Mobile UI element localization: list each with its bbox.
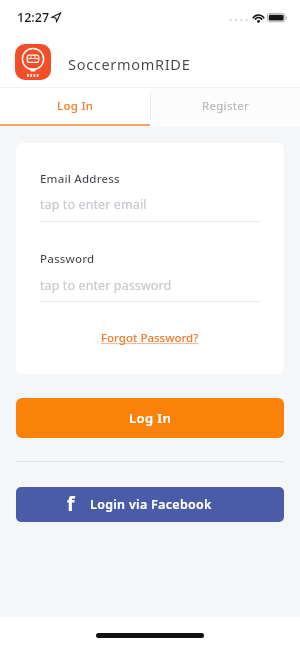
button[interactable]: Forgot Password? (101, 330, 199, 346)
staticText: 12:27 (17, 9, 50, 26)
button[interactable]: Log In (0, 88, 150, 124)
staticText: f (67, 491, 75, 517)
staticText: tap to enter password (40, 277, 172, 294)
staticText: Log In (129, 409, 172, 427)
staticText: Login via Facebook (90, 496, 212, 513)
button[interactable]: f (16, 487, 284, 522)
button[interactable]: Log In (16, 398, 284, 438)
staticText: Register (202, 98, 249, 114)
staticText: Password (40, 251, 95, 267)
staticText: Log In (57, 98, 94, 114)
staticText: tap to enter email (40, 196, 147, 213)
staticText: SoccermomRIDE (68, 54, 191, 74)
button[interactable]: Register (150, 88, 300, 124)
staticText: Email Address (40, 171, 120, 187)
button[interactable]: tap to enter password (40, 273, 260, 299)
button[interactable]: tap to enter email (40, 192, 260, 218)
